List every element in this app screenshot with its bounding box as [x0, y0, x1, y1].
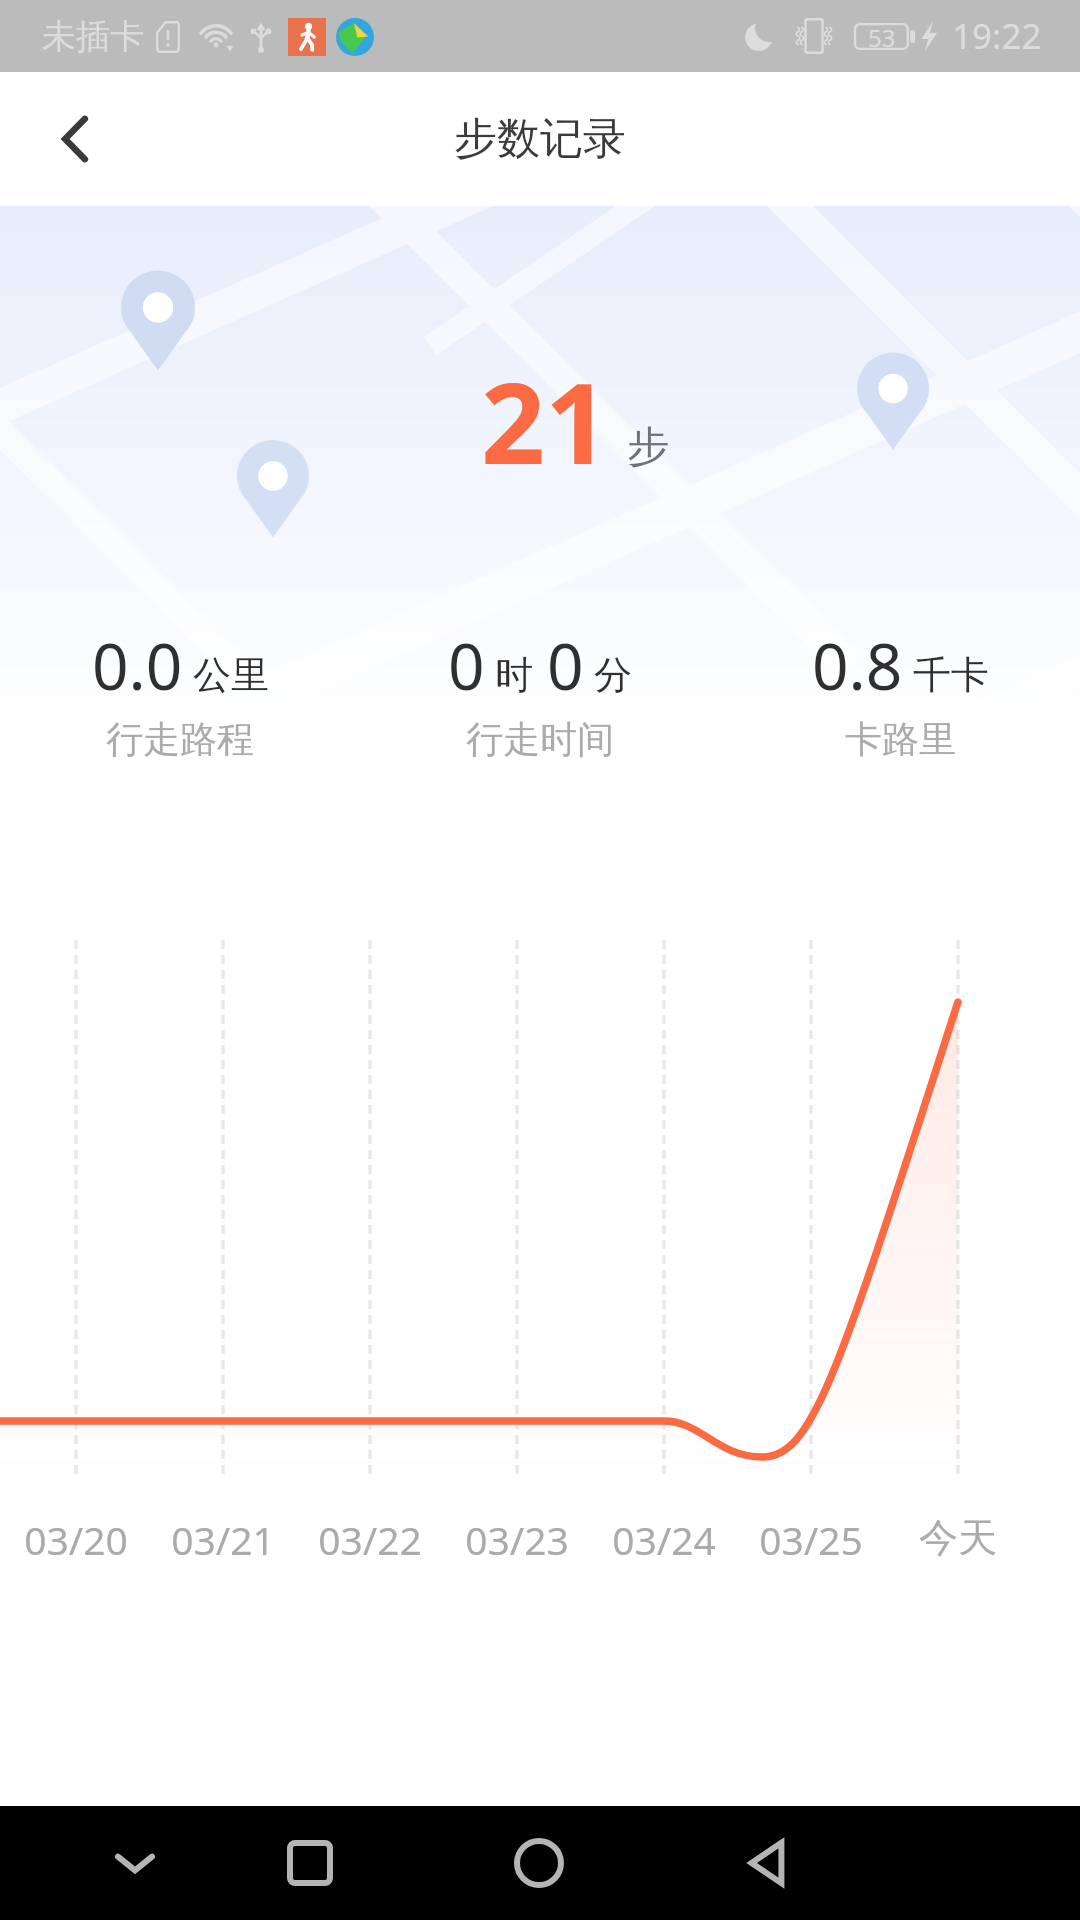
- staticText: 03/21: [171, 1513, 275, 1566]
- staticText: 0.8: [812, 622, 903, 709]
- staticText: 03/25: [759, 1513, 863, 1566]
- staticText: 行走路程: [106, 716, 254, 763]
- staticText: 03/20: [24, 1513, 128, 1566]
- staticText: 千卡: [913, 651, 989, 699]
- staticText: 0.0: [92, 622, 183, 709]
- button[interactable]: Hide keyboard: [78, 1806, 192, 1920]
- staticText: 步数记录: [454, 112, 626, 166]
- staticText: 分: [594, 651, 632, 699]
- staticText: 03/23: [465, 1513, 569, 1566]
- staticText: 03/24: [612, 1513, 716, 1566]
- staticText: 0: [547, 622, 584, 709]
- button[interactable]: Back: [710, 1806, 824, 1920]
- staticText: 今天: [919, 1513, 997, 1562]
- staticText: 03/22: [318, 1513, 422, 1566]
- staticText: 53: [868, 21, 896, 52]
- button[interactable]: Recents: [253, 1806, 367, 1920]
- button[interactable]: Back: [0, 72, 134, 206]
- button[interactable]: Home: [482, 1806, 596, 1920]
- staticText: 公里: [193, 651, 269, 699]
- staticText: 19:22: [952, 12, 1042, 60]
- staticText: 0: [448, 622, 485, 709]
- staticText: 卡路里: [845, 716, 956, 763]
- staticText: 行走时间: [466, 716, 614, 763]
- staticText: 21: [481, 344, 610, 497]
- staticText: 时: [495, 651, 533, 699]
- staticText: 步: [627, 421, 669, 474]
- staticText: 未插卡: [42, 15, 144, 58]
